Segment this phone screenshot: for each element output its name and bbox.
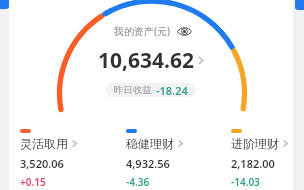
button[interactable]: Toggle amount visibility xyxy=(177,26,192,37)
staticText: -4.36 xyxy=(126,175,150,189)
staticText: 进阶理财 xyxy=(231,136,279,151)
staticText: 4,932.56 xyxy=(126,156,170,171)
staticText: 我的资产(元) xyxy=(114,24,170,38)
button[interactable]: 昨日收益 xyxy=(105,83,196,97)
staticText: 3,520.06 xyxy=(20,156,64,171)
button[interactable]: 灵活取用 xyxy=(20,129,94,189)
button[interactable]: 稳健理财 xyxy=(126,129,200,189)
staticText: -14.03 xyxy=(231,175,260,189)
staticText: -18.24 xyxy=(156,83,188,97)
button[interactable]: 进阶理财 xyxy=(231,129,304,189)
staticText: 10,634.62 xyxy=(98,46,194,75)
staticText: 稳健理财 xyxy=(126,136,174,151)
staticText: 2,182.00 xyxy=(231,156,275,171)
button[interactable]: 我的资产(元) xyxy=(114,24,192,38)
button[interactable]: 10,634.62 xyxy=(98,46,204,75)
staticText: +0.15 xyxy=(20,175,46,189)
staticText: 昨日收益 xyxy=(114,84,152,96)
staticText: 灵活取用 xyxy=(20,136,68,151)
